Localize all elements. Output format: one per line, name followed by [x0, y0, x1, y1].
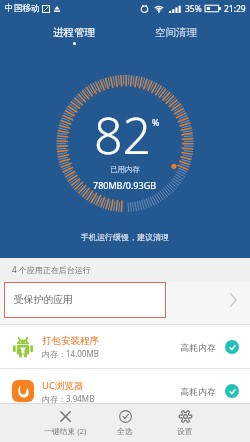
button[interactable]: 空间清理 — [143, 26, 208, 54]
staticText: 高耗内存 — [180, 386, 216, 397]
staticText: 内存：14.00MB — [42, 348, 99, 359]
button[interactable]: 进程管理 — [41, 26, 106, 54]
staticText: 35% — [185, 3, 202, 15]
staticText: 高耗内存 — [180, 342, 216, 353]
button[interactable]: 打包安装程序 — [0, 325, 250, 369]
button[interactable]: End all apps — [35, 404, 95, 442]
other: End all apps — [59, 410, 72, 423]
staticText: 空间清理 — [155, 26, 197, 39]
staticText: 打包安装程序 — [42, 335, 99, 347]
staticText: UC浏览器 — [42, 379, 84, 392]
staticText: 一键结束 (2) — [44, 426, 87, 437]
button[interactable]: Selected — [225, 340, 239, 354]
staticText: 4 个应用正在后台运行 — [12, 264, 91, 275]
button[interactable]: Settings — [155, 404, 215, 442]
other: Select all — [119, 410, 132, 423]
staticText: 设置 — [177, 426, 193, 436]
staticText: 全选 — [117, 426, 133, 436]
staticText: 82 — [94, 101, 152, 169]
staticText: 已用内存 — [110, 165, 140, 174]
staticText: 内存：3.94MB — [42, 393, 95, 404]
staticText: 手机运行缓慢，建议清理 — [81, 232, 169, 242]
staticText: 受保护的应用 — [14, 294, 73, 306]
button[interactable]: UC浏览器 — [0, 369, 250, 413]
button[interactable]: Select all — [95, 404, 155, 442]
button[interactable]: Selected — [225, 384, 239, 398]
staticText: 780MB/0.93GB — [93, 179, 157, 191]
staticText: 进程管理 — [53, 26, 95, 39]
button[interactable]: 受保护的应用 — [0, 282, 250, 325]
staticText: 中国移动 — [5, 3, 40, 14]
staticText: % — [152, 116, 160, 128]
other: Settings — [179, 410, 192, 423]
staticText: 21:29 — [224, 3, 246, 15]
